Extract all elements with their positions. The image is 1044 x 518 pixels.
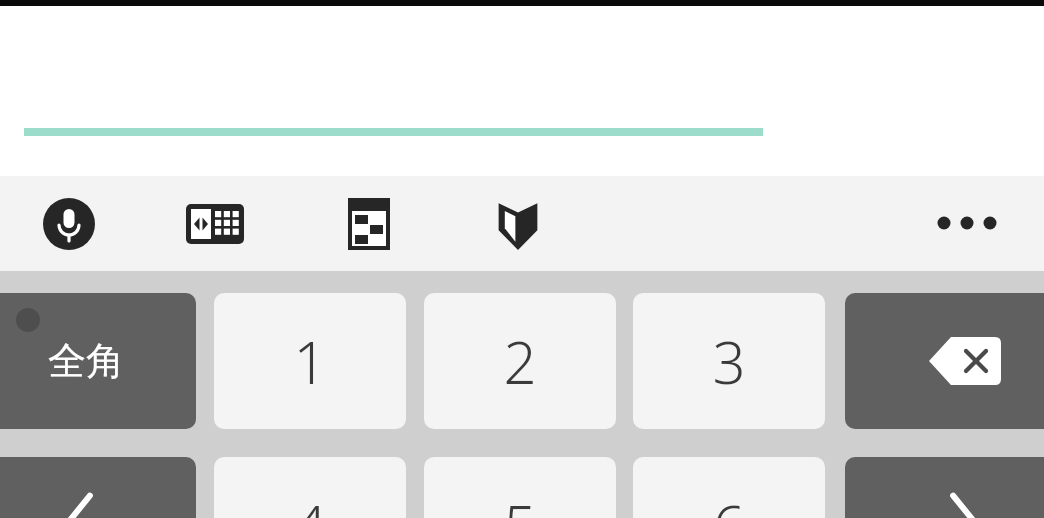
button[interactable]: 5: [424, 457, 616, 518]
button[interactable]: 全角: [0, 293, 196, 429]
button[interactable]: More options: [930, 197, 1004, 249]
button[interactable]: Clipboard history: [331, 198, 407, 250]
staticText: 全角: [48, 337, 124, 385]
staticText: 3: [712, 322, 746, 401]
staticText: 4: [293, 486, 327, 518]
button[interactable]: 4: [214, 457, 406, 518]
button[interactable]: Switch keyboard: [177, 198, 253, 250]
button[interactable]: 6: [633, 457, 825, 518]
button[interactable]: 3: [633, 293, 825, 429]
staticText: 5: [503, 486, 537, 518]
button[interactable]: Voice input: [31, 198, 107, 250]
button[interactable]: Move cursor left: [0, 457, 196, 518]
button[interactable]: Move cursor right: [845, 457, 1044, 518]
staticText: 1: [293, 322, 327, 401]
button[interactable]: 2: [424, 293, 616, 429]
button[interactable]: Backspace: [845, 293, 1044, 429]
button[interactable]: 1: [214, 293, 406, 429]
staticText: 2: [503, 322, 537, 401]
staticText: 6: [712, 486, 746, 518]
button[interactable]: Beginner mark: [480, 198, 556, 250]
